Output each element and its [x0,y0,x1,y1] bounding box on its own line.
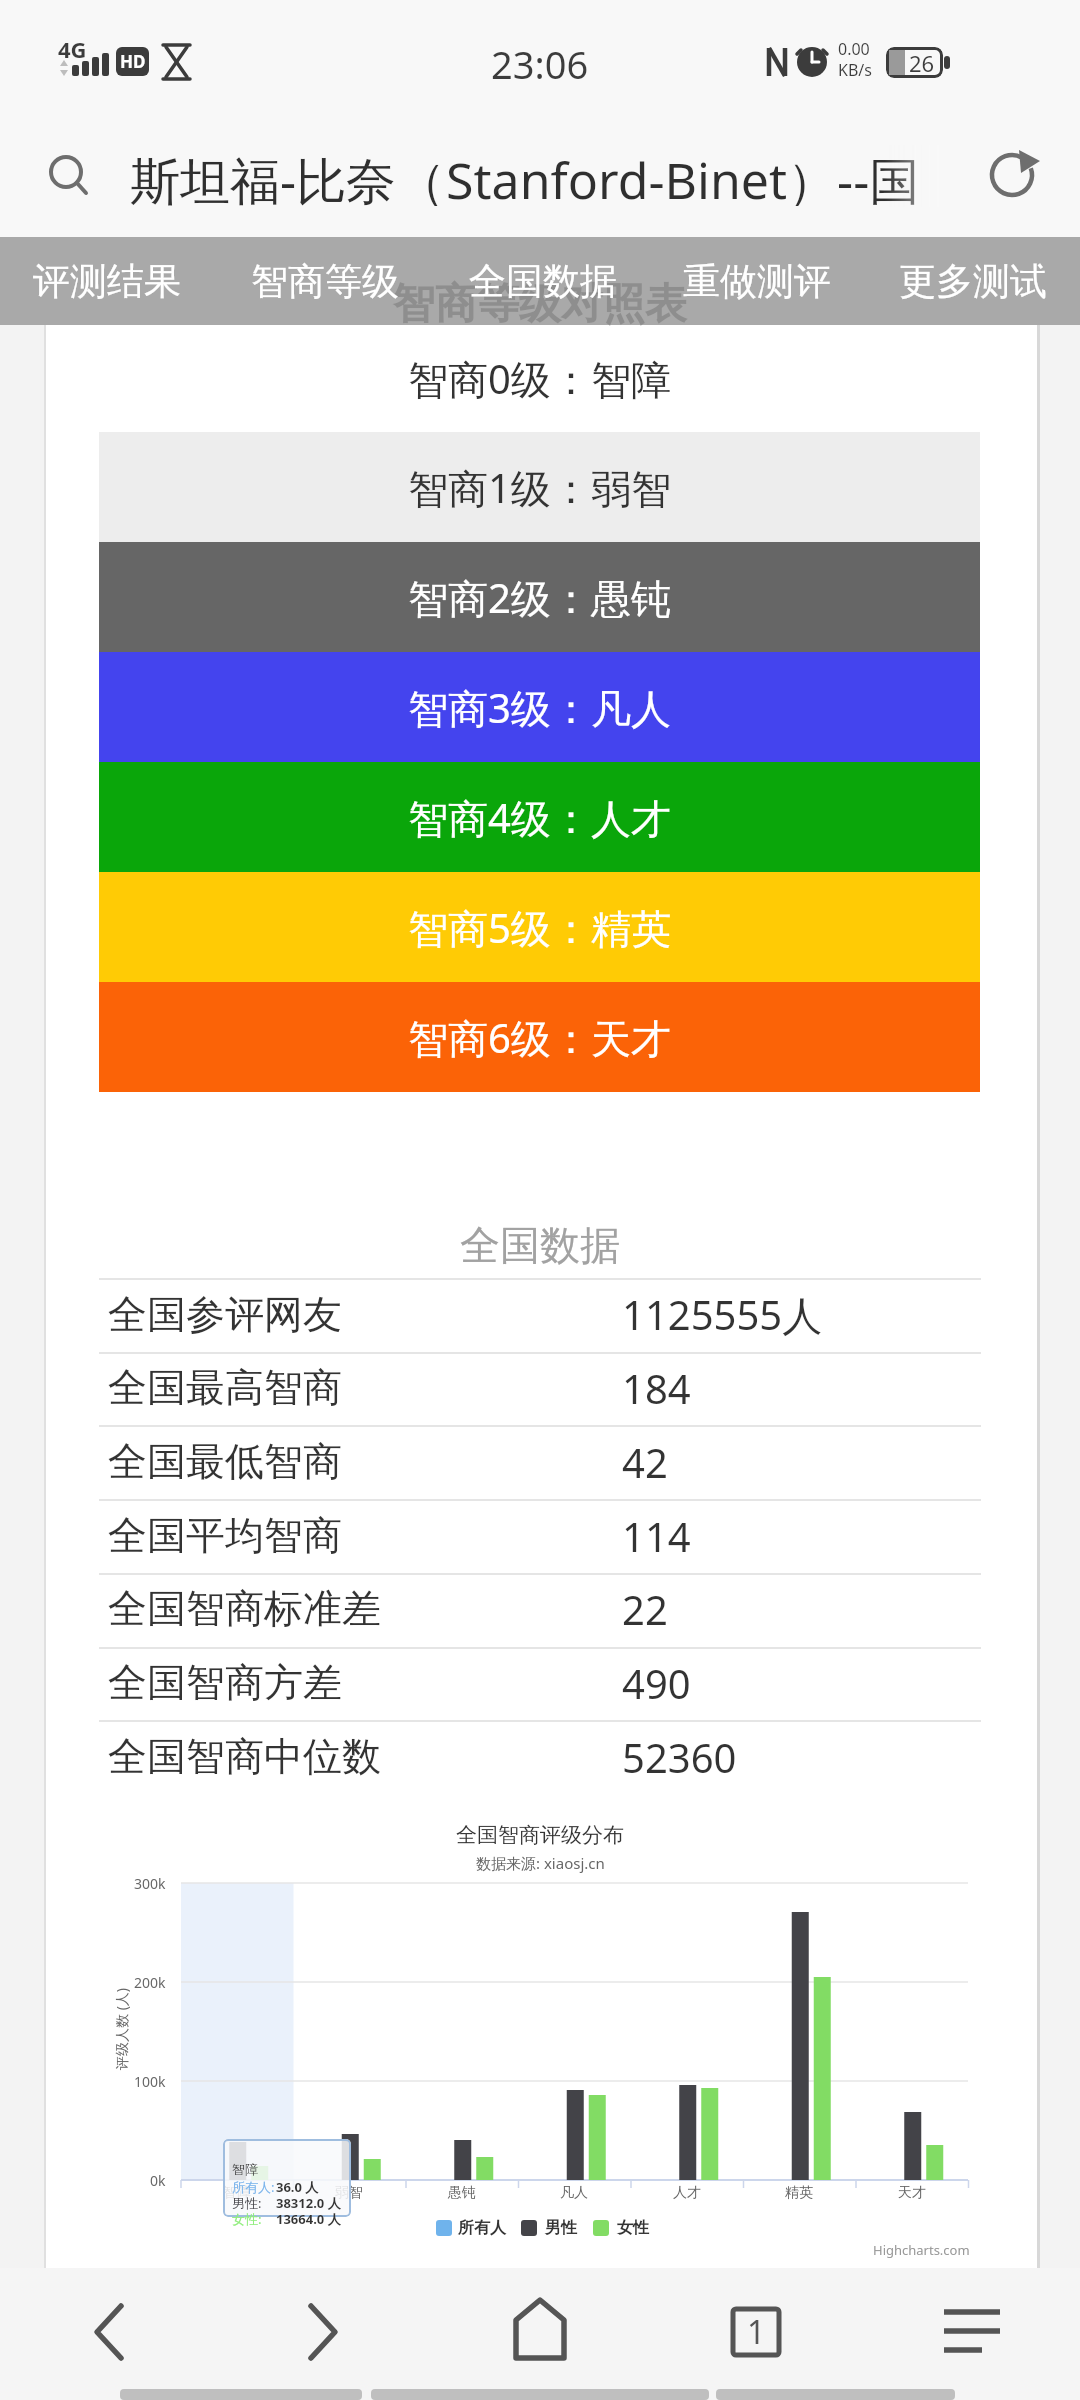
staticText: 全国智商方差 [108,1658,342,1707]
staticText: 全国智商中位数 [108,1732,381,1781]
button[interactable] [60,2280,170,2384]
staticText: 精英 [785,2184,813,2202]
staticText: 0k [150,2171,166,2190]
staticText: 38312.0 人 [276,2194,341,2210]
staticText: 23:06 [491,38,589,86]
staticText: 全国参评网友 [108,1290,342,1339]
staticText: 全国智商评级分布 [456,1822,624,1848]
staticText: 评测结果 [33,258,181,305]
staticText: 智商6级：天才 [408,1010,671,1065]
button[interactable]: 评测结果 [17,237,197,325]
button[interactable] [485,2280,595,2384]
staticText: 全国数据 [460,1220,620,1266]
staticText: 男性 [545,2218,577,2238]
staticText: 数据来源: xiaosj.cn [476,1853,605,1873]
staticText: 斯坦福-比奈（Stanford-Binet）--国 [130,146,920,206]
staticText: 重做测评 [683,258,831,305]
staticText: HD [120,50,146,73]
staticText: 女性 [617,2218,649,2238]
staticText: 智障 [223,2184,251,2202]
button[interactable] [917,2280,1027,2384]
button[interactable]: 智商等级 [235,237,415,325]
staticText: 22 [622,1582,668,1636]
staticText: 愚钝 [448,2184,476,2202]
button[interactable]: 全国数据 [453,237,633,325]
staticText: 300k [134,1874,166,1893]
staticText: 114 [622,1509,691,1563]
button[interactable]: 斯坦福-比奈（Stanford-Binet）--国 [130,146,990,206]
staticText: 1125555人 [622,1287,823,1342]
staticText: 智商0级：智障 [408,351,671,406]
staticText: 36.0 人 [276,2178,319,2194]
staticText: 智商等级 [251,258,399,305]
staticText: 智商1级：弱智 [408,460,671,515]
staticText: 凡人 [560,2184,588,2202]
staticText: 42 [622,1435,668,1489]
staticText: 26 [909,48,935,78]
staticText: 4G [58,34,87,62]
staticText: 490 [622,1656,691,1710]
staticText: 所有人: [232,2178,275,2194]
staticText: Highcharts.com [873,2241,970,2259]
staticText: 更多测试 [899,258,1047,305]
staticText: 男性: [232,2194,262,2210]
staticText: 智商4级：人才 [408,790,671,845]
staticText: 全国数据 [469,258,617,305]
staticText: 评级人数 (人) [112,1987,131,2070]
staticText: 100k [134,2072,166,2091]
staticText: 女性: [232,2210,262,2226]
button[interactable] [270,2280,380,2384]
staticText: 200k [134,1973,166,1992]
staticText: 全国智商标准差 [108,1584,381,1633]
staticText: KB/s [838,59,872,81]
button[interactable]: 重做测评 [667,237,847,325]
staticText: 全国最低智商 [108,1437,342,1486]
staticText: 弱智 [335,2184,363,2202]
staticText: 智障 [232,2161,258,2177]
staticText: 智商等级对照表 [393,278,687,331]
staticText: 天才 [898,2184,926,2202]
staticText: 184 [622,1361,691,1415]
staticText: 0.00 [838,38,870,60]
staticText: 智商3级：凡人 [408,680,671,735]
staticText: 智商2级：愚钝 [408,570,671,625]
staticText: 人才 [673,2184,701,2202]
staticText: 全国平均智商 [108,1511,342,1560]
button[interactable] [700,2280,810,2384]
staticText: 52360 [622,1730,737,1784]
staticText: 1 [747,2310,766,2354]
staticText: 全国最高智商 [108,1363,342,1412]
staticText: 13664.0 人 [276,2210,341,2226]
staticText: 所有人 [458,2218,506,2238]
button[interactable]: 更多测试 [883,237,1063,325]
staticText: 智商5级：精英 [408,900,671,955]
